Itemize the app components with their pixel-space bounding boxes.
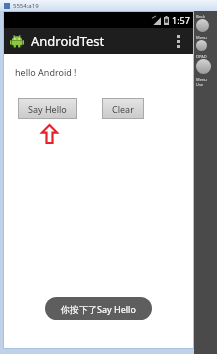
staticText: Say Hello xyxy=(28,103,67,115)
staticText: DPAD xyxy=(196,54,207,59)
staticText: 1:57 xyxy=(172,14,190,26)
button[interactable]: Hardware button xyxy=(196,19,209,32)
staticText: Use xyxy=(196,82,204,87)
button[interactable]: Hardware button xyxy=(196,40,207,51)
button[interactable]: Clear xyxy=(103,99,143,118)
button[interactable]: More options xyxy=(169,32,187,50)
staticText: Menu xyxy=(196,35,207,40)
staticText: Menu xyxy=(196,77,207,82)
staticText: 你按下了Say Hello xyxy=(61,303,136,315)
button[interactable]: Hardware button xyxy=(196,59,211,74)
staticText: Back xyxy=(196,14,205,19)
staticText: Clear xyxy=(112,103,134,115)
button[interactable]: Say Hello xyxy=(19,99,76,118)
staticText: 5554:a19 xyxy=(13,2,39,10)
staticText: AndroidTest xyxy=(31,32,105,50)
staticText: hello Android ! xyxy=(15,66,77,78)
